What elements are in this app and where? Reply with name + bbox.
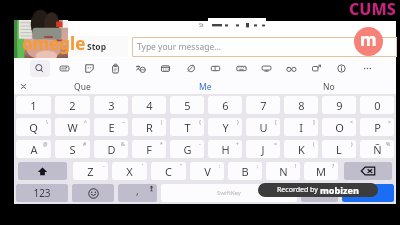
staticText: St bbox=[199, 22, 204, 29]
button[interactable]: Z bbox=[73, 162, 108, 180]
button[interactable]: Stickers bbox=[79, 58, 100, 79]
button[interactable]: Me bbox=[144, 79, 267, 94]
staticText: H bbox=[221, 142, 230, 157]
button[interactable]: L bbox=[322, 140, 356, 158]
staticText: O bbox=[335, 120, 344, 135]
button[interactable]: Keyboard layout bbox=[231, 58, 252, 79]
button[interactable]: S bbox=[55, 140, 90, 158]
staticText: 7 bbox=[260, 98, 267, 113]
staticText: 4 bbox=[146, 98, 153, 113]
staticText: 2 bbox=[69, 98, 76, 113]
button[interactable]: Video preview bbox=[14, 20, 68, 59]
staticText: Me bbox=[199, 81, 212, 93]
button[interactable]: 3 bbox=[94, 96, 128, 114]
button[interactable]: Translate bbox=[130, 58, 151, 79]
button[interactable]: 123 bbox=[16, 184, 68, 202]
staticText: B bbox=[241, 164, 249, 179]
button[interactable]: Enter bbox=[342, 184, 394, 202]
button[interactable]: Calendar bbox=[155, 58, 176, 79]
button[interactable]: More options bbox=[357, 58, 378, 79]
button[interactable]: K bbox=[284, 140, 318, 158]
button[interactable]: Info bbox=[331, 58, 352, 79]
button[interactable]: Resize keyboard bbox=[306, 58, 327, 79]
button[interactable]: Que bbox=[21, 79, 144, 94]
staticText: ] bbox=[313, 119, 315, 126]
staticText: W bbox=[67, 120, 78, 135]
staticText: mobizen bbox=[320, 184, 359, 196]
button[interactable]: Q bbox=[16, 118, 51, 136]
button[interactable]: Ñ bbox=[360, 140, 394, 158]
staticText: 8 bbox=[298, 98, 305, 113]
button[interactable]: Stop bbox=[70, 36, 128, 57]
button[interactable]: R bbox=[132, 118, 166, 136]
button[interactable]: Search bbox=[29, 58, 50, 79]
button[interactable]: U bbox=[246, 118, 280, 136]
button[interactable]: Y bbox=[208, 118, 242, 136]
button[interactable]: X bbox=[112, 162, 147, 180]
button[interactable]: Themes bbox=[180, 58, 201, 79]
staticText: N bbox=[279, 164, 288, 179]
staticText: * bbox=[160, 141, 163, 148]
button[interactable]: No bbox=[267, 79, 390, 94]
staticText: J bbox=[261, 142, 265, 157]
staticText: & bbox=[121, 141, 125, 148]
button[interactable]: A bbox=[16, 140, 51, 158]
staticText: \ bbox=[46, 119, 48, 126]
button[interactable]: W bbox=[55, 118, 90, 136]
button[interactable]: 6 bbox=[208, 96, 242, 114]
button[interactable]: One handed mode bbox=[205, 58, 226, 79]
staticText: ! bbox=[295, 163, 297, 170]
button[interactable]: E bbox=[94, 118, 128, 136]
button[interactable]: F bbox=[132, 140, 166, 158]
button[interactable]: 7 bbox=[246, 96, 280, 114]
staticText: G bbox=[183, 142, 192, 157]
staticText: m bbox=[360, 28, 377, 51]
button[interactable]: 5 bbox=[170, 96, 204, 114]
staticText: ^ bbox=[84, 119, 87, 126]
button[interactable]: 8 bbox=[284, 96, 318, 114]
button[interactable]: Space bbox=[161, 184, 297, 202]
staticText: : bbox=[219, 163, 221, 170]
staticText: P bbox=[374, 120, 381, 135]
staticText: A bbox=[30, 142, 38, 157]
staticText: X bbox=[126, 164, 133, 179]
button[interactable]: P bbox=[360, 118, 394, 136]
button[interactable]: D bbox=[94, 140, 128, 158]
button[interactable]: 1 bbox=[16, 96, 51, 114]
button[interactable]: Clipboard bbox=[105, 58, 126, 79]
button[interactable]: GIF bbox=[54, 58, 75, 79]
button[interactable]: B bbox=[228, 162, 262, 180]
staticText: ~ bbox=[122, 119, 125, 126]
button[interactable]: J bbox=[246, 140, 280, 158]
button[interactable]: V bbox=[190, 162, 224, 180]
staticText: @ bbox=[43, 141, 48, 148]
staticText: - bbox=[199, 141, 201, 148]
button[interactable]: O bbox=[322, 118, 356, 136]
button[interactable]: I bbox=[284, 118, 318, 136]
button[interactable]: Shift bbox=[18, 162, 67, 180]
button[interactable]: 4 bbox=[132, 96, 166, 114]
button[interactable]: 9 bbox=[322, 96, 356, 114]
button[interactable]: T bbox=[170, 118, 204, 136]
button[interactable]: C bbox=[151, 162, 186, 180]
staticText: > bbox=[388, 119, 391, 126]
staticText: Type your message... bbox=[137, 41, 222, 53]
button[interactable]: Incognito bbox=[281, 58, 302, 79]
button[interactable]: G bbox=[170, 140, 204, 158]
button[interactable]: 2 bbox=[55, 96, 90, 114]
button[interactable]: H bbox=[208, 140, 242, 158]
staticText: CUMS bbox=[349, 0, 396, 20]
staticText: D bbox=[107, 142, 116, 157]
button[interactable]: Mobizen recorder bbox=[354, 27, 383, 56]
button[interactable]: Type your message... bbox=[132, 37, 397, 57]
button[interactable]: Comma and voice input bbox=[118, 184, 157, 202]
button[interactable]: Emoji bbox=[72, 184, 114, 202]
button[interactable]: Backspace bbox=[344, 162, 392, 180]
button[interactable]: 0 bbox=[360, 96, 394, 114]
button[interactable]: M bbox=[304, 162, 338, 180]
button[interactable]: Desktop mode bbox=[256, 58, 277, 79]
button[interactable]: . bbox=[301, 184, 338, 202]
staticText: , bbox=[136, 184, 139, 198]
button[interactable]: Expand suggestions bbox=[15, 79, 31, 94]
button[interactable]: N bbox=[266, 162, 300, 180]
